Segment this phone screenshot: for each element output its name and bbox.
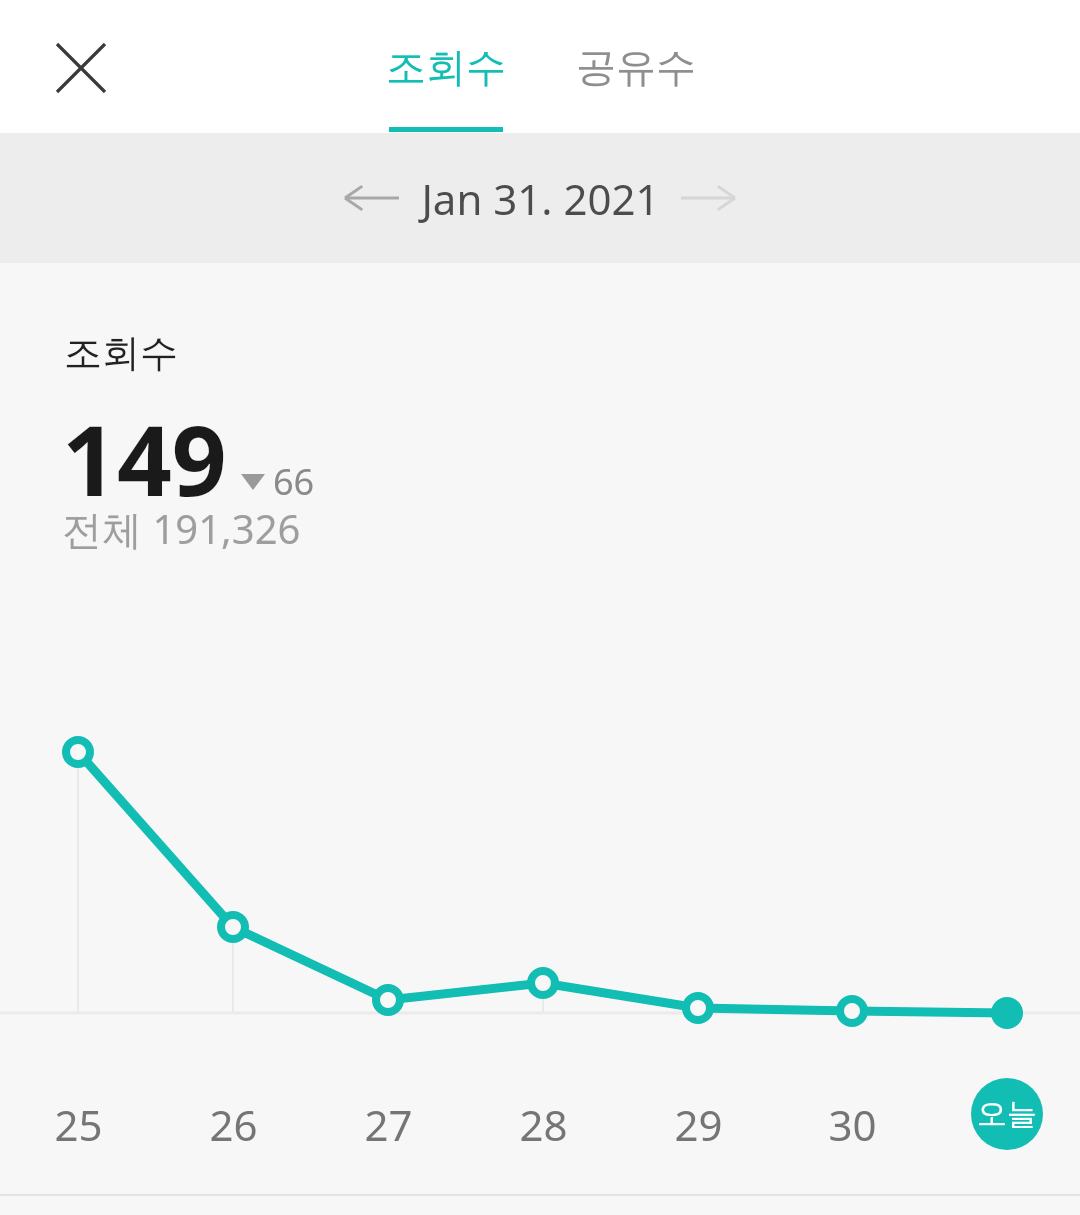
button[interactable]: 오늘 <box>971 1078 1043 1150</box>
staticText: 27 <box>364 1096 413 1153</box>
button[interactable]: Jan 31. 2021 <box>415 155 665 241</box>
staticText: 29 <box>674 1096 723 1153</box>
staticText: 오늘 <box>977 1095 1037 1133</box>
staticText: 조회수 <box>64 329 178 377</box>
button[interactable]: 공유수 <box>546 6 726 133</box>
button[interactable]: Close <box>36 23 126 113</box>
staticText: 전체 191,326 <box>62 501 301 556</box>
button[interactable]: 30 <box>797 1084 907 1164</box>
button[interactable]: Previous day <box>329 155 415 241</box>
staticText: 28 <box>519 1096 568 1153</box>
staticText: 공유수 <box>546 42 726 92</box>
staticText: 조회수 <box>356 42 536 92</box>
staticText: 66 <box>273 457 315 506</box>
button[interactable]: Next day <box>665 155 751 241</box>
staticText: 25 <box>54 1096 103 1153</box>
staticText: 149 <box>62 393 227 524</box>
button[interactable]: 조회수 <box>356 6 536 133</box>
button[interactable]: 26 <box>178 1084 288 1164</box>
staticText: Jan 31. 2021 <box>421 170 660 227</box>
button[interactable]: 25 <box>23 1084 133 1164</box>
button[interactable]: 29 <box>643 1084 753 1164</box>
staticText: 26 <box>209 1096 258 1153</box>
staticText: 30 <box>828 1096 877 1153</box>
button[interactable]: 27 <box>333 1084 443 1164</box>
button[interactable]: 28 <box>488 1084 598 1164</box>
